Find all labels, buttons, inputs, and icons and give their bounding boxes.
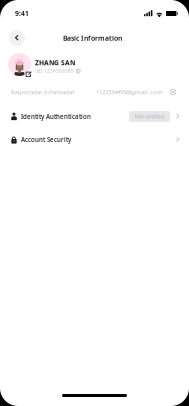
button[interactable]: Account Security bbox=[0, 128, 189, 151]
staticText: Identity Authentication bbox=[21, 112, 91, 121]
button[interactable]: ZHANG SAN bbox=[0, 49, 189, 79]
staticText: 1122334455@gmail.com bbox=[96, 88, 163, 96]
staticText: Basic Information bbox=[63, 33, 122, 43]
button[interactable]: Identity Authentication bbox=[0, 105, 189, 128]
staticText: Account Security bbox=[21, 135, 71, 144]
button[interactable]: Clear bbox=[166, 85, 180, 99]
staticText: UID: 1234569589 bbox=[35, 68, 74, 74]
staticText: Registration Information bbox=[11, 88, 75, 96]
staticText: ZHANG SAN bbox=[35, 58, 75, 67]
button[interactable]: Back bbox=[5, 27, 29, 49]
staticText: 9:41 bbox=[15, 9, 29, 18]
staticText: Not certified bbox=[135, 113, 164, 120]
